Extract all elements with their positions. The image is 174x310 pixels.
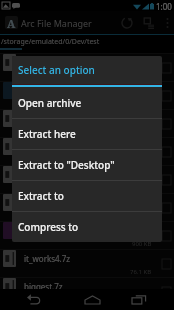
staticText: Extract here <box>18 127 76 141</box>
button[interactable]: Home <box>75 289 109 310</box>
staticText: A <box>7 16 16 29</box>
staticText: /storage/emulated/0/Dev/test <box>1 37 100 47</box>
staticText: archive3.rar <box>24 197 69 208</box>
button[interactable]: Extract to <box>12 181 162 211</box>
button[interactable]: /storage/emulated/0/Dev/test <box>0 34 174 53</box>
button[interactable]: screenshot.png <box>0 82 174 109</box>
staticText: Arc File Manager <box>21 17 92 29</box>
staticText: Extract to "Desktop" <box>18 158 115 172</box>
staticText: 1:00 <box>156 1 172 12</box>
staticText: 3.08 MB <box>129 296 152 304</box>
staticText: biggest.7z <box>24 281 63 292</box>
button[interactable]: Open archive <box>12 87 162 118</box>
staticText: Compress to <box>18 220 79 234</box>
staticText: readme.txt <box>24 141 66 152</box>
staticText: clip.mp4 <box>24 225 57 236</box>
button[interactable]: Refresh <box>116 11 138 34</box>
button[interactable]: clip.mp4 <box>0 222 174 249</box>
button[interactable]: Sort <box>138 11 160 34</box>
button[interactable]: archive1.7z <box>0 54 174 81</box>
staticText: screenshot.png <box>24 85 83 96</box>
staticText: 900 KB <box>132 240 152 248</box>
button[interactable]: Extract to "Desktop" <box>12 150 162 180</box>
staticText: Open archive <box>18 96 82 110</box>
button[interactable]: biggest.7z <box>0 278 174 305</box>
staticText: archive2.zip <box>24 113 69 124</box>
staticText: Select an option <box>18 63 95 77</box>
button[interactable]: readme.txt <box>0 138 174 165</box>
button[interactable]: Back <box>16 289 50 310</box>
staticText: it_works4.7z <box>24 253 71 264</box>
button[interactable]: archive3.rar <box>0 194 174 221</box>
button[interactable]: Extract here <box>12 119 162 149</box>
staticText: archive1.7z <box>24 57 67 68</box>
button[interactable]: archive2.zip <box>0 110 174 137</box>
button[interactable]: notes.txt <box>0 166 174 193</box>
staticText: 76.1 KB <box>130 268 152 276</box>
button[interactable]: Compress to <box>12 212 162 241</box>
staticText: Extract to <box>18 189 64 203</box>
button[interactable]: Recent apps <box>122 289 156 310</box>
button[interactable]: it_works4.7z <box>0 250 174 277</box>
